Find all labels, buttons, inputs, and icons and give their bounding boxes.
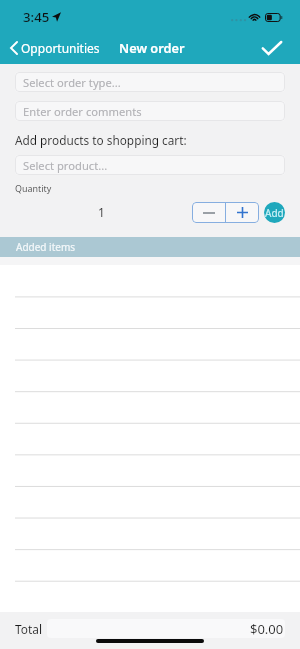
staticText: Total [15,621,43,637]
staticText: Add products to shopping cart: [15,132,187,148]
button[interactable]: Opportunities [0,31,108,64]
button[interactable]: Enter order comments [15,101,285,121]
staticText: 1 [98,204,105,220]
staticText: Select order type... [23,75,121,90]
button[interactable]: Select order type... [15,72,285,92]
staticText: Enter order comments [23,104,142,119]
button[interactable]: Select product... [15,155,285,175]
staticText: Select product... [23,158,108,173]
button[interactable]: Decrease quantity [192,202,225,223]
staticText: Add [265,206,284,220]
button[interactable]: Increase quantity [226,202,259,223]
button[interactable]: $0.00 [47,619,285,638]
staticText: New order [119,39,185,56]
staticText: Opportunities [21,40,100,56]
button[interactable]: Save order [250,31,300,64]
button[interactable]: Add [264,202,285,223]
staticText: Quantity [15,182,52,194]
staticText: 3:45 [23,8,50,26]
staticText: Added items [16,240,76,254]
staticText: $0.00 [250,620,284,638]
